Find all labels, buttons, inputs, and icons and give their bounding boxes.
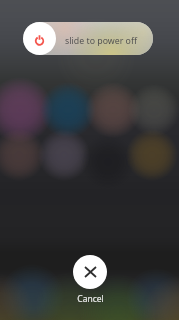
other: Slide to power off	[23, 22, 56, 55]
staticText: Cancel	[77, 293, 104, 305]
button[interactable]: Cancel	[64, 255, 115, 305]
button[interactable]: slide to power off	[23, 22, 153, 55]
staticText: slide to power off	[65, 35, 137, 47]
